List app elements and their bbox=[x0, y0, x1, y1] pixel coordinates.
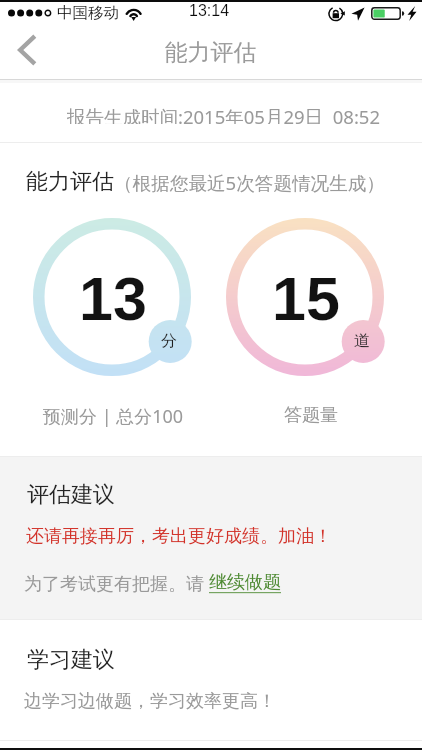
staticText: 预测分 | 总分100 bbox=[43, 404, 184, 429]
staticText: 15 bbox=[272, 265, 340, 333]
staticText: 报告生成时间:2015年05月29日 08:52 bbox=[67, 104, 381, 124]
staticText: 边学习边做题，学习效率更高！ bbox=[24, 690, 276, 713]
staticText: 还请再接再厉，考出更好成绩。加油！ bbox=[26, 525, 332, 548]
staticText: 答题量 bbox=[284, 404, 338, 427]
staticText: 13:14 bbox=[189, 2, 230, 20]
staticText: 中国移动 bbox=[57, 3, 119, 23]
button[interactable]: Back bbox=[0, 26, 54, 79]
staticText: 评估建议 bbox=[27, 481, 115, 509]
staticText: （根据您最近5次答题情况生成） bbox=[114, 170, 385, 195]
button[interactable]: 继续做题 bbox=[209, 571, 281, 594]
staticText: 为了考试更有把握。请 bbox=[24, 571, 209, 596]
staticText: 道 bbox=[354, 331, 370, 351]
staticText: 13 bbox=[79, 265, 147, 333]
staticText: 分 bbox=[161, 331, 177, 351]
staticText: 学习建议 bbox=[27, 646, 115, 674]
staticText: 能力评估 bbox=[165, 38, 257, 67]
staticText: 能力评估 bbox=[26, 168, 114, 196]
